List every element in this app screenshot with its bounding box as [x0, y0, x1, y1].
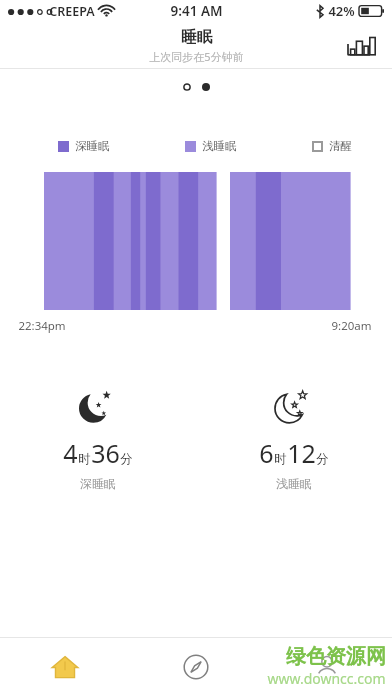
staticText: 22:34pm	[18, 318, 66, 334]
staticText: 42%	[328, 2, 355, 20]
button[interactable]: 深睡眠	[0, 386, 196, 491]
staticText: 4	[63, 436, 78, 470]
staticText: 36	[91, 436, 120, 470]
staticText: 上次同步在5分钟前	[149, 49, 244, 64]
other: 深睡眠	[75, 386, 121, 426]
staticText: CREEPA	[49, 3, 95, 20]
staticText: 绿色资源网	[286, 644, 386, 669]
button[interactable]: Statistics	[336, 24, 380, 68]
button[interactable]: Profile	[261, 637, 392, 696]
staticText: 深睡眠	[75, 139, 110, 153]
staticText: 分	[316, 451, 329, 467]
staticText: 9:20am	[331, 318, 372, 334]
staticText: 浅睡眠	[202, 139, 237, 153]
button[interactable]: 清醒	[312, 139, 352, 153]
other: 浅睡眠	[271, 386, 317, 426]
button[interactable]: 深睡眠	[58, 139, 110, 153]
button[interactable]: 浅睡眠	[185, 139, 237, 153]
staticText: 6	[259, 436, 274, 470]
staticText: 时	[274, 451, 287, 467]
button[interactable]: Explore	[130, 637, 261, 696]
staticText: 睡眠	[181, 27, 212, 47]
staticText: 浅睡眠	[276, 476, 312, 491]
staticText: www.downcc.com	[267, 669, 386, 688]
button[interactable]: Home	[0, 637, 130, 696]
staticText: 12	[287, 436, 316, 470]
staticText: 9:41 AM	[170, 2, 223, 20]
staticText: 时	[78, 451, 91, 467]
staticText: 清醒	[329, 139, 352, 153]
button[interactable]: 浅睡眠	[196, 386, 392, 491]
staticText: 深睡眠	[80, 476, 116, 491]
staticText: 分	[120, 451, 133, 467]
